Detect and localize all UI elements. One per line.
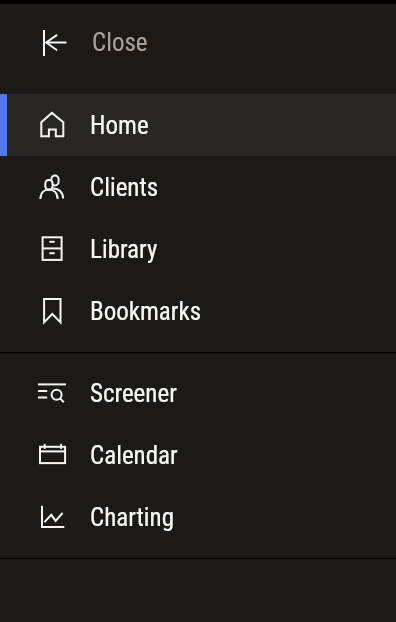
button[interactable]: Close navigation drawer (0, 4, 396, 80)
staticText: Screener (90, 379, 177, 408)
staticText: Bookmarks (90, 297, 202, 326)
button[interactable]: Screener (0, 362, 396, 424)
button[interactable]: Library (0, 218, 396, 280)
staticText: Clients (90, 173, 159, 202)
staticText: Calendar (90, 441, 178, 470)
staticText: Charting (90, 503, 175, 532)
staticText: Close (92, 28, 148, 57)
staticText: Home (90, 111, 149, 140)
button[interactable]: Home (0, 94, 396, 156)
button[interactable]: Calendar (0, 424, 396, 486)
button[interactable]: Charting (0, 486, 396, 548)
staticText: Library (90, 235, 158, 264)
button[interactable]: Bookmarks (0, 280, 396, 342)
button[interactable]: Clients (0, 156, 396, 218)
